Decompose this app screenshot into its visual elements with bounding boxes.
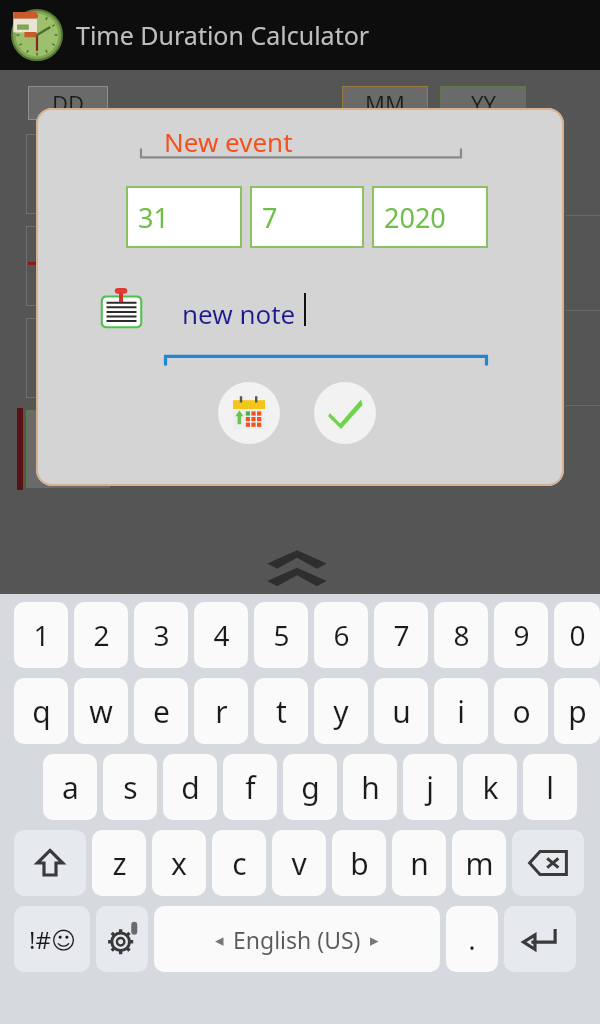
button[interactable]: 9 <box>494 602 548 668</box>
button[interactable]: m <box>452 830 506 896</box>
staticText: d <box>181 767 200 808</box>
button[interactable]: 6 <box>314 602 368 668</box>
staticText: English (US) <box>233 924 361 955</box>
staticText: g <box>301 767 320 808</box>
button[interactable]: j <box>403 754 457 820</box>
staticText: v <box>291 843 307 884</box>
button[interactable]: y <box>314 678 368 744</box>
staticText: 4 <box>213 616 230 654</box>
button[interactable]: 1 <box>14 602 68 668</box>
button[interactable]: v <box>272 830 326 896</box>
staticText: Time Duration Calculator <box>76 18 370 52</box>
button[interactable]: w <box>74 678 128 744</box>
button[interactable]: z <box>92 830 146 896</box>
button[interactable]: l <box>523 754 577 820</box>
staticText: u <box>392 691 411 732</box>
staticText: t <box>276 691 287 732</box>
button[interactable]: 3 <box>134 602 188 668</box>
staticText: MM <box>365 88 405 118</box>
button[interactable]: !#☺ <box>14 906 90 972</box>
staticText: b <box>350 843 369 884</box>
button[interactable]: 0 <box>554 602 600 668</box>
staticText: 7 <box>262 199 278 236</box>
button[interactable]: r <box>194 678 248 744</box>
staticText: 2 <box>93 616 110 654</box>
button[interactable]: 8 <box>434 602 488 668</box>
button[interactable]: 5 <box>254 602 308 668</box>
staticText: f <box>245 767 256 808</box>
button[interactable]: 2020 <box>372 186 488 248</box>
staticText: !#☺ <box>29 923 76 956</box>
button[interactable]: k <box>463 754 517 820</box>
button[interactable]: 2 <box>74 602 128 668</box>
staticText: 7 <box>393 616 410 654</box>
button[interactable]: o <box>494 678 548 744</box>
staticText: p <box>568 691 587 732</box>
button[interactable]: p <box>554 678 600 744</box>
staticText: 2020 <box>384 199 446 236</box>
button[interactable]: t <box>254 678 308 744</box>
button[interactable]: u <box>374 678 428 744</box>
button[interactable]: e <box>134 678 188 744</box>
button[interactable]: Expand <box>266 548 328 592</box>
staticText: ▸ <box>370 930 379 950</box>
button[interactable]: b <box>332 830 386 896</box>
staticText: New event <box>164 124 293 159</box>
staticText: l <box>546 767 554 808</box>
staticText: YY <box>471 88 496 118</box>
staticText: a <box>62 767 79 808</box>
staticText: i <box>457 691 465 732</box>
button[interactable]: 7 <box>374 602 428 668</box>
staticText: new note <box>182 296 296 331</box>
staticText: s <box>123 767 138 808</box>
staticText: z <box>112 843 127 884</box>
staticText: 6 <box>333 616 350 654</box>
button[interactable]: Pick date <box>218 382 280 444</box>
button[interactable]: d <box>163 754 217 820</box>
staticText: 1 <box>33 616 50 654</box>
staticText: 8 <box>453 616 470 654</box>
staticText: h <box>361 767 380 808</box>
staticText: e <box>153 691 170 732</box>
button[interactable]: Backspace <box>512 830 584 896</box>
staticText: j <box>426 767 434 808</box>
button[interactable]: g <box>283 754 337 820</box>
button[interactable]: s <box>103 754 157 820</box>
staticText: k <box>482 767 499 808</box>
button[interactable]: 31 <box>126 186 242 248</box>
staticText: m <box>465 843 494 884</box>
button[interactable]: ◂ <box>154 906 440 972</box>
button[interactable]: i <box>434 678 488 744</box>
button[interactable]: Settings <box>96 906 148 972</box>
staticText: ◂ <box>215 930 224 950</box>
staticText: DD <box>52 88 85 118</box>
staticText: y <box>333 691 349 732</box>
button[interactable]: f <box>223 754 277 820</box>
staticText: x <box>171 843 187 884</box>
staticText: 31 <box>138 199 169 236</box>
staticText: 5 <box>273 616 290 654</box>
staticText: q <box>32 691 51 732</box>
button[interactable]: Shift <box>14 830 86 896</box>
staticText: 3 <box>153 616 170 654</box>
button[interactable]: Enter <box>504 906 576 972</box>
button[interactable]: 7 <box>250 186 364 248</box>
button[interactable]: c <box>212 830 266 896</box>
staticText: n <box>410 843 429 884</box>
staticText: . <box>468 920 476 958</box>
button[interactable]: . <box>446 906 498 972</box>
staticText: r <box>215 691 228 732</box>
staticText: 0 <box>569 616 586 654</box>
button[interactable]: x <box>152 830 206 896</box>
button[interactable]: Confirm <box>314 382 376 444</box>
staticText: c <box>232 843 247 884</box>
button[interactable]: q <box>14 678 68 744</box>
staticText: 9 <box>513 616 530 654</box>
button[interactable]: n <box>392 830 446 896</box>
button[interactable]: h <box>343 754 397 820</box>
button[interactable]: 4 <box>194 602 248 668</box>
staticText: o <box>512 691 531 732</box>
staticText: w <box>89 691 113 732</box>
button[interactable]: a <box>43 754 97 820</box>
